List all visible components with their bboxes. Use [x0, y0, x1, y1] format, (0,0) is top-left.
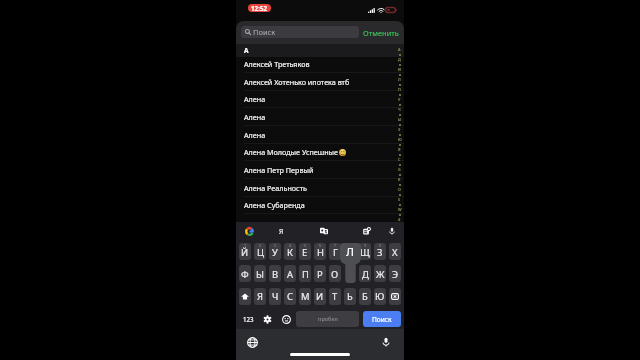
button[interactable]: Р — [314, 265, 326, 282]
staticText: О — [331, 268, 339, 281]
button[interactable]: 0 — [374, 243, 386, 260]
button[interactable]: А — [284, 265, 296, 282]
staticText: 7 — [334, 243, 337, 248]
staticText: Н — [317, 246, 324, 259]
button[interactable]: 123 — [239, 311, 257, 327]
other: Stickers — [363, 227, 371, 235]
button[interactable]: 9 — [359, 243, 371, 260]
button[interactable]: Emoji — [277, 311, 295, 327]
button[interactable]: Алексей Хотенько ипотека втб — [236, 73, 404, 91]
button[interactable]: Алена Реальность — [236, 179, 404, 197]
button[interactable]: Change language — [246, 336, 258, 348]
staticText: Поиск — [372, 315, 392, 324]
button[interactable]: Алексей Третьяков — [236, 55, 404, 73]
button[interactable]: Х — [389, 243, 401, 260]
button[interactable]: Ь — [344, 288, 356, 305]
button[interactable]: Алена Молодые Успешные — [236, 143, 404, 161]
staticText: Ч — [398, 107, 401, 112]
staticText: K — [398, 177, 401, 182]
staticText: G — [398, 167, 401, 172]
staticText: Е — [302, 246, 308, 259]
button[interactable]: Google — [242, 224, 256, 238]
button[interactable]: Ю — [374, 288, 386, 305]
staticText: 12:52 — [251, 4, 268, 12]
staticText: Л — [398, 77, 401, 82]
staticText: Э — [392, 268, 399, 281]
button[interactable]: Алена Субаренда — [236, 196, 404, 214]
button[interactable]: Отменить — [363, 26, 399, 40]
staticText: А — [398, 47, 401, 52]
button[interactable]: пробел — [296, 311, 359, 327]
button[interactable]: Б — [359, 288, 371, 305]
button[interactable]: 5 — [299, 243, 311, 260]
staticText: И — [316, 290, 324, 303]
button[interactable]: Алена — [236, 90, 404, 108]
staticText: Алена Петр Первый — [244, 165, 314, 175]
button[interactable]: 4 — [284, 243, 296, 260]
button[interactable]: Я — [274, 224, 288, 238]
button[interactable]: О — [329, 265, 341, 282]
button[interactable]: Ч — [269, 288, 281, 305]
other: Google — [245, 227, 254, 236]
staticText: Ж — [376, 268, 385, 281]
button[interactable]: Voice input — [380, 336, 392, 348]
button[interactable]: 6 — [314, 243, 326, 260]
button[interactable]: 1 — [239, 243, 251, 260]
staticText: Ы — [256, 268, 264, 281]
button[interactable]: Translate — [317, 224, 331, 238]
button[interactable]: Ж — [374, 265, 386, 282]
staticText: Щ — [360, 246, 370, 259]
staticText: Поиск — [253, 27, 276, 37]
staticText: Я — [279, 227, 284, 236]
staticText: O — [398, 187, 401, 192]
button[interactable]: Э — [389, 265, 401, 282]
staticText: Д — [398, 57, 401, 62]
staticText: W — [398, 207, 402, 212]
staticText: Э — [398, 127, 401, 132]
button[interactable]: Поиск — [241, 26, 359, 38]
button[interactable]: Shift — [239, 288, 251, 305]
staticText: 0 — [379, 243, 382, 248]
button[interactable]: Алена — [236, 108, 404, 126]
staticText: 9 — [364, 243, 367, 248]
staticText: Ю — [398, 137, 402, 142]
staticText: Х — [392, 246, 398, 259]
button[interactable]: Voice input — [385, 224, 399, 238]
staticText: Алексей Хотенько ипотека втб — [244, 77, 350, 87]
button[interactable]: Ы — [254, 265, 266, 282]
button[interactable]: Backspace — [389, 288, 401, 305]
button[interactable]: И — [314, 288, 326, 305]
staticText: Ч — [272, 290, 279, 303]
button[interactable]: П — [299, 265, 311, 282]
staticText: 4 — [289, 243, 292, 248]
button[interactable]: 2 — [254, 243, 266, 260]
button[interactable]: 7 — [329, 243, 341, 260]
staticText: A — [244, 46, 249, 55]
staticText: 1 — [244, 243, 247, 248]
staticText: П — [302, 268, 309, 281]
button[interactable]: Т — [329, 288, 341, 305]
button[interactable]: Ф — [239, 265, 251, 282]
staticText: C — [398, 157, 401, 162]
button[interactable]: Поиск — [363, 311, 401, 327]
staticText: Д — [362, 268, 369, 281]
staticText: К — [287, 246, 293, 259]
button[interactable]: В — [269, 265, 281, 282]
staticText: Алена Субаренда — [244, 200, 305, 210]
button[interactable]: Я — [254, 288, 266, 305]
button[interactable]: Stickers — [360, 224, 374, 238]
button[interactable]: Д — [359, 265, 371, 282]
button[interactable]: С — [284, 288, 296, 305]
button[interactable]: М — [299, 288, 311, 305]
button[interactable]: Алена — [236, 126, 404, 144]
button[interactable]: Алена Петр Первый — [236, 161, 404, 179]
button[interactable]: Settings — [258, 311, 276, 327]
staticText: 5 — [304, 243, 307, 248]
other: Translate — [320, 227, 328, 235]
staticText: П — [398, 87, 401, 92]
staticText: 6 — [319, 243, 322, 248]
button[interactable]: 3 — [269, 243, 281, 260]
staticText: З — [377, 246, 383, 259]
staticText: 123 — [243, 315, 254, 323]
staticText: Я — [398, 147, 401, 152]
